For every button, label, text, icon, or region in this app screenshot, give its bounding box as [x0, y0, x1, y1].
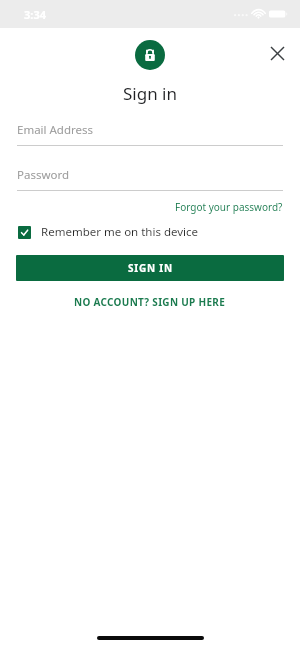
button[interactable]: Forgot your password? [175, 198, 283, 216]
staticText: Email Address [17, 122, 94, 138]
staticText: Forgot your password? [175, 200, 283, 214]
button[interactable]: Remember me on this device [0, 222, 300, 242]
staticText: Sign in [123, 82, 177, 105]
button[interactable]: Email Address [17, 122, 283, 146]
staticText: Remember me on this device [41, 224, 199, 240]
staticText: SIGN IN [128, 261, 173, 275]
staticText: 3:34 [24, 7, 46, 22]
staticText: NO ACCOUNT? SIGN UP HERE [74, 295, 226, 309]
button[interactable]: Close [262, 38, 292, 68]
staticText: Password [17, 167, 70, 183]
button[interactable]: SIGN IN [16, 255, 284, 281]
button[interactable]: NO ACCOUNT? SIGN UP HERE [68, 292, 232, 312]
button[interactable]: Password [17, 167, 283, 191]
